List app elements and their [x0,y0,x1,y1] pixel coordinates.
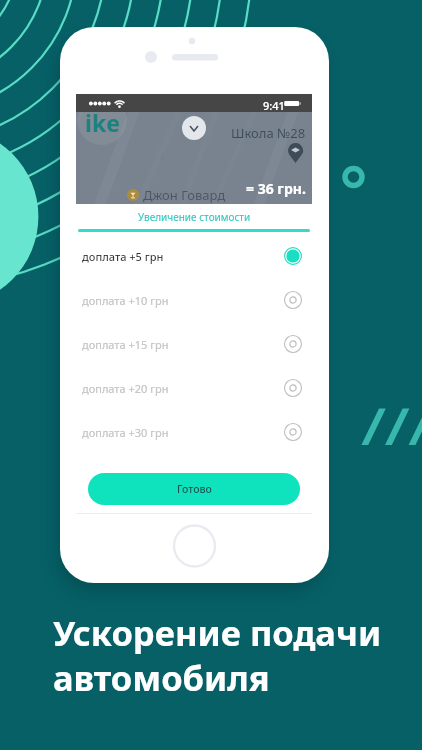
button[interactable]: доплата +15 грн [76,322,312,366]
staticText: доплата +20 грн [82,381,284,396]
staticText: доплата +10 грн [82,293,284,308]
button[interactable]: доплата +20 грн [76,366,312,410]
button[interactable]: доплата +5 грн [76,234,312,278]
staticText: Джон Говард [143,186,226,204]
staticText: ike [85,112,120,138]
staticText: Увеличение стоимости [138,210,251,224]
button[interactable]: доплата +10 грн [76,278,312,322]
staticText: Ускорение подачи автомобиля [53,609,382,701]
staticText: доплата +30 грн [82,425,284,440]
staticText: Школа №28 [231,124,306,142]
staticText: 9:41 [263,98,285,113]
staticText: Готово [177,482,212,496]
button[interactable]: доплата +30 грн [76,410,312,454]
button[interactable]: Готово [88,473,300,505]
staticText: доплата +15 грн [82,337,284,352]
button[interactable]: Collapse [182,116,206,140]
staticText: = 36 грн. [246,179,306,198]
staticText: доплата +5 грн [82,249,284,264]
